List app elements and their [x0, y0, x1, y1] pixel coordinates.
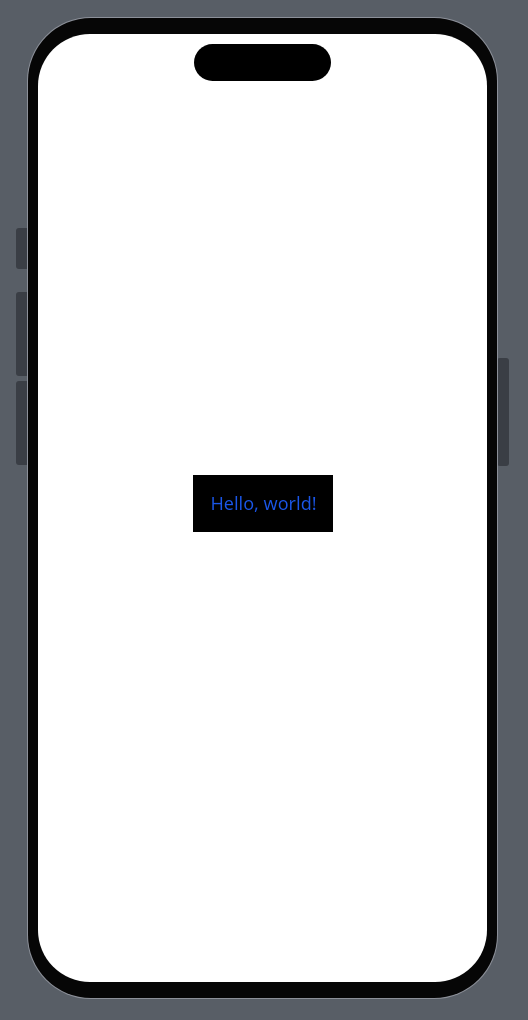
staticText: Hello, world! — [210, 491, 317, 516]
button[interactable]: Hello, world! — [193, 475, 333, 532]
